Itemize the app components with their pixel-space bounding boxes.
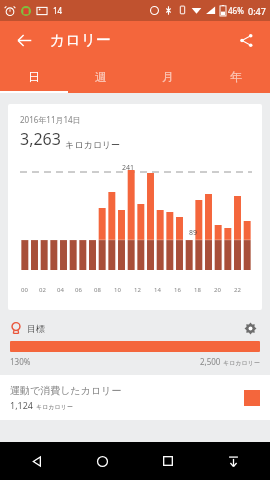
button[interactable]: Home — [87, 446, 117, 476]
staticText: キロカロリー — [223, 359, 260, 367]
staticText: 18 — [194, 286, 201, 294]
staticText: 日 — [28, 69, 40, 84]
staticText: 目標 — [27, 323, 45, 334]
staticText: 週 — [95, 69, 107, 84]
staticText: カロリー — [50, 31, 112, 50]
staticText: 16 — [174, 286, 181, 294]
staticText: キロカロリー — [36, 403, 73, 411]
staticText: 89 — [189, 228, 198, 238]
staticText: 06 — [75, 286, 82, 294]
staticText: 08 — [94, 286, 101, 294]
staticText: 年 — [230, 69, 242, 84]
staticText: 04 — [57, 286, 64, 294]
staticText: 14 — [53, 5, 63, 16]
button[interactable]: Back — [10, 26, 38, 54]
staticText: 1,124 — [10, 399, 34, 411]
staticText: 2016年11月14日 — [20, 114, 81, 125]
staticText: 130% — [10, 356, 31, 367]
button[interactable]: 週 — [67, 59, 134, 93]
staticText: 12 — [134, 286, 141, 294]
button[interactable]: 年 — [202, 59, 270, 93]
staticText: 2,500 — [200, 356, 221, 367]
staticText: 22 — [234, 286, 241, 294]
staticText: 46% — [228, 5, 244, 16]
button[interactable]: Settings — [240, 318, 260, 338]
button[interactable]: Back — [22, 446, 52, 476]
staticText: 241 — [122, 163, 135, 173]
staticText: 10 — [114, 286, 121, 294]
staticText: 20 — [214, 286, 221, 294]
staticText: 00 — [21, 286, 28, 294]
button[interactable]: Hide keyboard — [218, 446, 248, 476]
button[interactable]: Share — [232, 26, 260, 54]
staticText: 月 — [162, 69, 174, 84]
button[interactable]: 日 — [0, 59, 67, 93]
staticText: 14 — [154, 286, 161, 294]
button[interactable]: 運動で消費したカロリー — [0, 375, 270, 420]
staticText: 02 — [39, 286, 46, 294]
button[interactable]: Recent apps — [153, 446, 183, 476]
button[interactable]: 月 — [134, 59, 202, 93]
staticText: 運動で消費したカロリー — [10, 384, 122, 397]
staticText: 0:47 — [248, 5, 266, 17]
staticText: 3,263 — [20, 128, 61, 150]
staticText: キロカロリー — [65, 139, 121, 150]
